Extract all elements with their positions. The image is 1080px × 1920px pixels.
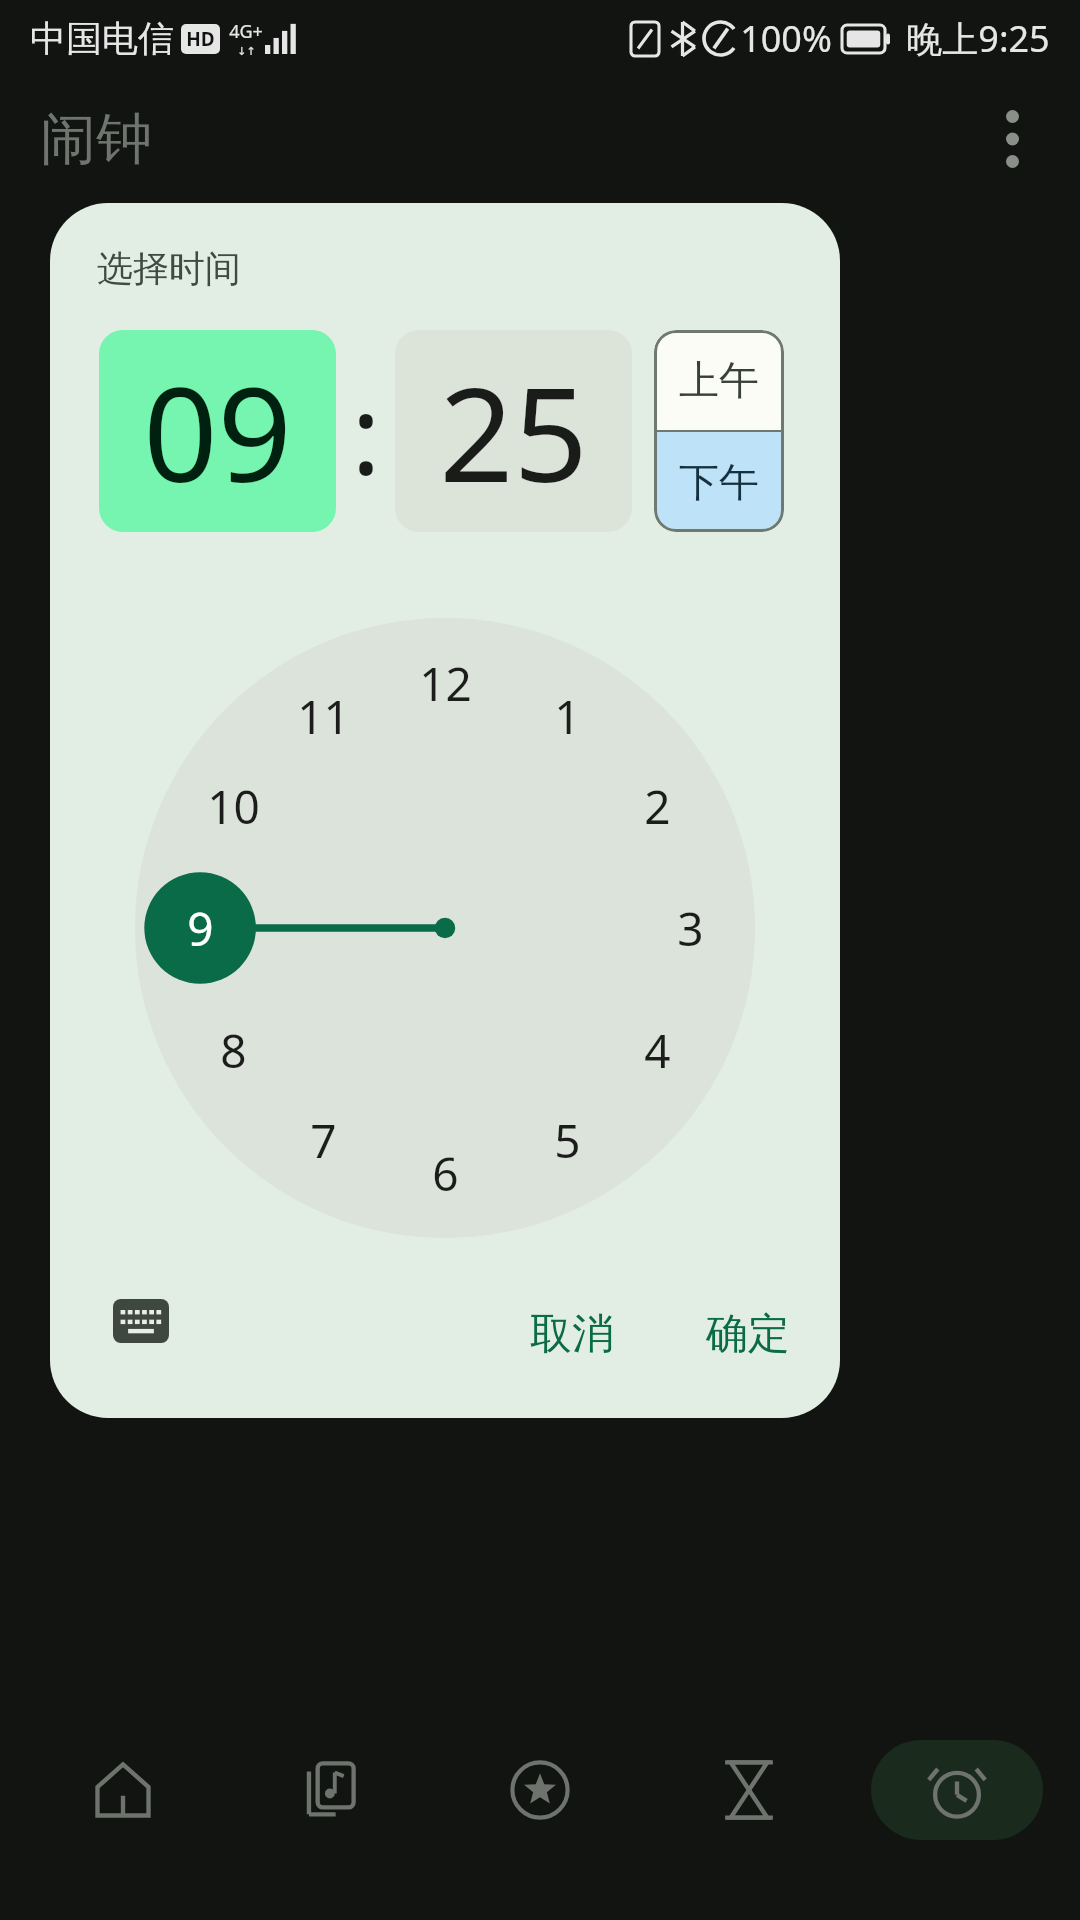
- button[interactable]: 8: [185, 1002, 281, 1098]
- button[interactable]: 上午: [654, 330, 784, 430]
- button[interactable]: 11: [275, 668, 371, 764]
- button[interactable]: 下午: [654, 432, 784, 532]
- button[interactable]: 25: [395, 330, 632, 532]
- staticText: 10: [207, 775, 260, 838]
- button[interactable]: Switch to text input: [98, 1278, 184, 1364]
- button[interactable]: Home: [37, 1740, 209, 1840]
- staticText: 4G+: [229, 19, 263, 44]
- staticText: HD: [186, 26, 215, 52]
- staticText: 确定: [706, 1308, 790, 1361]
- staticText: 取消: [530, 1308, 614, 1361]
- staticText: 闹钟: [40, 104, 152, 175]
- staticText: 7: [310, 1109, 337, 1172]
- staticText: ↓↑: [237, 45, 256, 58]
- button[interactable]: 2: [609, 758, 705, 854]
- button[interactable]: 9: [152, 880, 248, 976]
- button[interactable]: 12: [397, 635, 493, 731]
- staticText: 25: [439, 343, 588, 520]
- button[interactable]: 6: [397, 1125, 493, 1221]
- staticText: :: [351, 356, 381, 506]
- staticText: 5: [554, 1109, 581, 1172]
- button[interactable]: 4: [609, 1002, 705, 1098]
- button[interactable]: 5: [519, 1092, 615, 1188]
- staticText: 下午: [679, 457, 759, 507]
- staticText: 3: [677, 897, 704, 960]
- button[interactable]: Music: [245, 1740, 417, 1840]
- staticText: 100%: [740, 14, 832, 63]
- button[interactable]: 7: [275, 1092, 371, 1188]
- button[interactable]: 确定: [678, 1288, 818, 1381]
- staticText: 2: [644, 775, 671, 838]
- button[interactable]: 取消: [502, 1288, 642, 1381]
- button[interactable]: Timer: [663, 1740, 835, 1840]
- staticText: 选择时间: [97, 246, 241, 291]
- staticText: 6: [432, 1142, 459, 1205]
- button[interactable]: Alarm: [871, 1740, 1043, 1840]
- staticText: 中国电信: [30, 16, 174, 61]
- button[interactable]: 10: [185, 758, 281, 854]
- staticText: 4: [644, 1019, 671, 1082]
- staticText: 晚上9:25: [906, 14, 1050, 63]
- staticText: 09: [143, 343, 292, 520]
- button[interactable]: Favorites: [454, 1740, 626, 1840]
- staticText: 9: [187, 897, 214, 960]
- staticText: 1: [554, 685, 581, 748]
- staticText: 12: [419, 652, 472, 715]
- staticText: 11: [297, 685, 350, 748]
- staticText: 8: [220, 1019, 247, 1082]
- button[interactable]: More options: [964, 91, 1060, 187]
- button[interactable]: 3: [642, 880, 738, 976]
- button[interactable]: 09: [99, 330, 336, 532]
- button[interactable]: 1: [519, 668, 615, 764]
- staticText: 上午: [679, 355, 759, 405]
